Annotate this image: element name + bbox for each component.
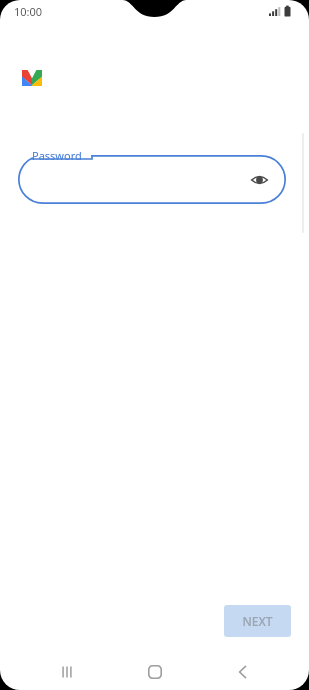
button[interactable]: Show password (18, 155, 286, 204)
button[interactable]: Recent apps (49, 654, 85, 690)
staticText: NEXT (242, 613, 273, 629)
button[interactable]: Back (225, 654, 261, 690)
staticText: 10:00 (14, 4, 43, 19)
button[interactable]: NEXT (224, 605, 291, 637)
button[interactable]: Home (137, 654, 173, 690)
button[interactable]: Show password (246, 167, 272, 193)
staticText: Password (32, 148, 82, 163)
